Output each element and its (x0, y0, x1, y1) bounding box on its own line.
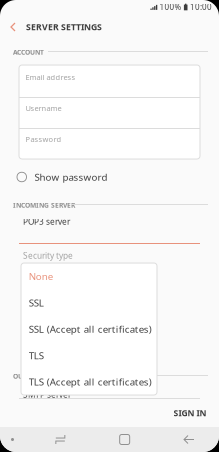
button[interactable]: Show password (17, 170, 127, 184)
staticText: TLS (Accept all certificates) (29, 375, 152, 388)
staticText: Security type (23, 250, 73, 261)
staticText: Show password (34, 170, 107, 184)
staticText: None (29, 270, 53, 283)
staticText: Username (25, 103, 61, 113)
button[interactable]: Back (171, 427, 207, 452)
button[interactable]: None (21, 263, 157, 289)
staticText: SSL (Accept all certificates) (29, 322, 152, 336)
staticText: POP3 server (23, 216, 70, 227)
staticText: Password (25, 134, 61, 144)
button[interactable]: SSL (Accept all certificates) (21, 316, 157, 342)
button[interactable]: TLS (21, 342, 157, 369)
staticText: ACCOUNT (13, 47, 44, 57)
button[interactable]: Recent apps (42, 427, 78, 452)
button[interactable]: SIGN IN (168, 403, 212, 423)
button[interactable]: Back (0, 14, 26, 40)
staticText: INCOMING SERVER (13, 200, 75, 210)
staticText: SIGN IN (173, 407, 206, 419)
button[interactable]: SSL (21, 289, 157, 316)
button[interactable]: TLS (Accept all certificates) (21, 369, 157, 395)
button[interactable]: Home (107, 427, 143, 452)
staticText: 100% (159, 2, 181, 12)
staticText: OUTGOING SERVER (13, 371, 76, 381)
staticText: SSL (29, 296, 44, 309)
staticText: SERVER SETTINGS (26, 21, 102, 33)
staticText: SMTP server (23, 389, 71, 400)
staticText: 10:00 (190, 2, 212, 12)
staticText: TLS (29, 349, 44, 362)
staticText: Email address (25, 72, 75, 82)
